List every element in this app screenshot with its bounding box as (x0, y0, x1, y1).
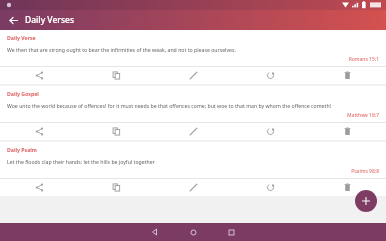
button[interactable]: Share (0, 179, 78, 196)
button[interactable]: Edit (155, 123, 232, 140)
button[interactable]: Refresh (232, 179, 309, 196)
staticText: Matthew 18:7 (0, 112, 379, 119)
button[interactable]: Refresh (232, 67, 309, 84)
button[interactable]: Copy (78, 179, 155, 196)
staticText: Romans 15:1 (0, 56, 379, 63)
button[interactable]: Copy (78, 67, 155, 84)
staticText: Daily Verses (25, 14, 75, 26)
button[interactable]: Daily Verse (0, 30, 386, 84)
button[interactable]: Refresh (232, 123, 309, 140)
staticText: Let the floods clap their hands: let the… (7, 158, 377, 165)
staticText: Daily Psalm (7, 146, 37, 153)
button[interactable]: Home (184, 223, 202, 241)
staticText: Daily Gospel (7, 90, 39, 97)
button[interactable]: Share (0, 123, 78, 140)
button[interactable]: Copy (78, 123, 155, 140)
button[interactable]: Back (146, 223, 164, 241)
button[interactable]: Edit (155, 67, 232, 84)
button[interactable]: Edit (155, 179, 232, 196)
staticText: Daily Verse (7, 34, 36, 41)
button[interactable]: Share (0, 67, 78, 84)
button[interactable]: Recents (222, 223, 240, 241)
button[interactable]: Add (355, 190, 377, 212)
button[interactable]: Delete (309, 67, 386, 84)
button[interactable]: Delete (309, 179, 386, 196)
staticText: We then that are strong ought to bear th… (7, 46, 377, 53)
button[interactable]: Back (5, 12, 21, 28)
button[interactable]: Daily Psalm (0, 142, 386, 196)
button[interactable]: Delete (309, 123, 386, 140)
staticText: Psalms 98:8 (0, 168, 379, 175)
button[interactable]: Daily Gospel (0, 86, 386, 140)
staticText: Woe unto the world because of offences! … (7, 102, 377, 109)
